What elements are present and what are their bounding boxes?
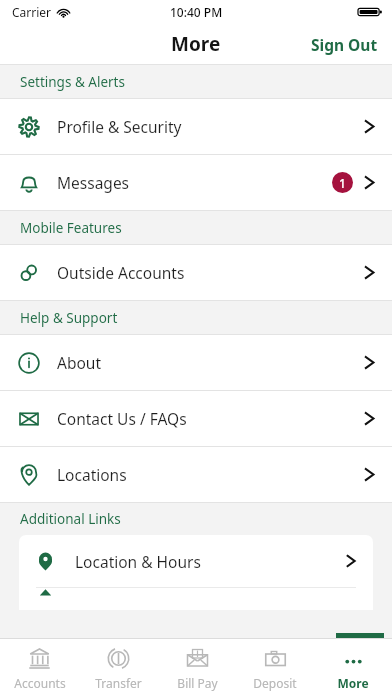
staticText: Outside Accounts: [57, 262, 363, 283]
staticText: Settings & Alerts: [20, 73, 125, 91]
staticText: Contact Us / FAQs: [57, 408, 363, 429]
button[interactable]: Profile & Security: [0, 99, 392, 154]
staticText: Mobile Features: [20, 219, 122, 237]
button[interactable]: Bill Pay: [158, 639, 236, 696]
staticText: About: [57, 352, 363, 373]
button[interactable]: Messages: [0, 155, 392, 210]
staticText: Deposit: [253, 675, 297, 691]
button[interactable]: Deposit: [236, 639, 314, 696]
staticText: Transfer: [95, 675, 142, 691]
staticText: Accounts: [14, 675, 66, 691]
button[interactable]: Contact Us / FAQs: [0, 391, 392, 446]
button[interactable]: About: [0, 335, 392, 390]
staticText: Additional Links: [20, 510, 121, 528]
staticText: Carrier: [12, 4, 52, 20]
staticText: 1: [339, 175, 346, 191]
staticText: Bill Pay: [177, 675, 218, 691]
button[interactable]: Outside Accounts: [0, 245, 392, 300]
button[interactable]: Locations: [0, 447, 392, 502]
button[interactable]: Sign Out: [297, 28, 392, 61]
button[interactable]: More: [314, 639, 392, 696]
staticText: Profile & Security: [57, 116, 363, 137]
staticText: Location & Hours: [75, 551, 345, 572]
button[interactable]: Accounts: [0, 639, 79, 696]
staticText: Sign Out: [311, 34, 378, 55]
staticText: 10:40 PM: [170, 4, 223, 20]
staticText: Help & Support: [20, 309, 118, 327]
staticText: More: [171, 31, 221, 57]
staticText: Locations: [57, 464, 363, 485]
button[interactable]: Transfer: [79, 639, 158, 696]
staticText: Messages: [57, 172, 332, 193]
button[interactable]: Location & Hours: [19, 535, 373, 587]
staticText: More: [337, 675, 369, 691]
